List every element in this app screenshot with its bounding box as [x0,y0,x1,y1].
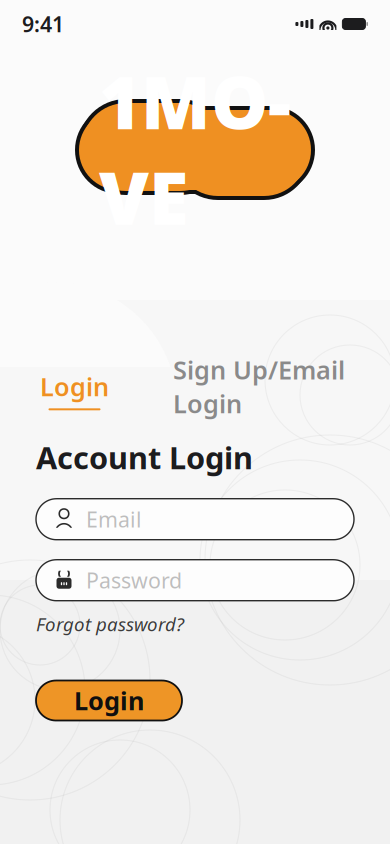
button[interactable]: Password [36,560,354,601]
button[interactable]: Email [36,499,354,540]
staticText: 1MOVE [99,53,291,245]
staticText: Password [86,566,182,594]
button[interactable]: Forgot password? [36,610,184,638]
button[interactable]: Sign Up/Email Login [169,347,349,433]
button[interactable]: Login [36,364,113,416]
staticText: Email [86,505,142,533]
staticText: Account Login [36,437,253,478]
staticText: 9:41 [22,10,64,38]
staticText: Login [74,684,144,717]
staticText: Login [40,370,109,403]
staticText: Forgot password? [36,612,184,636]
button[interactable]: Login [36,680,182,720]
staticText: Sign Up/Email Login [173,353,345,420]
